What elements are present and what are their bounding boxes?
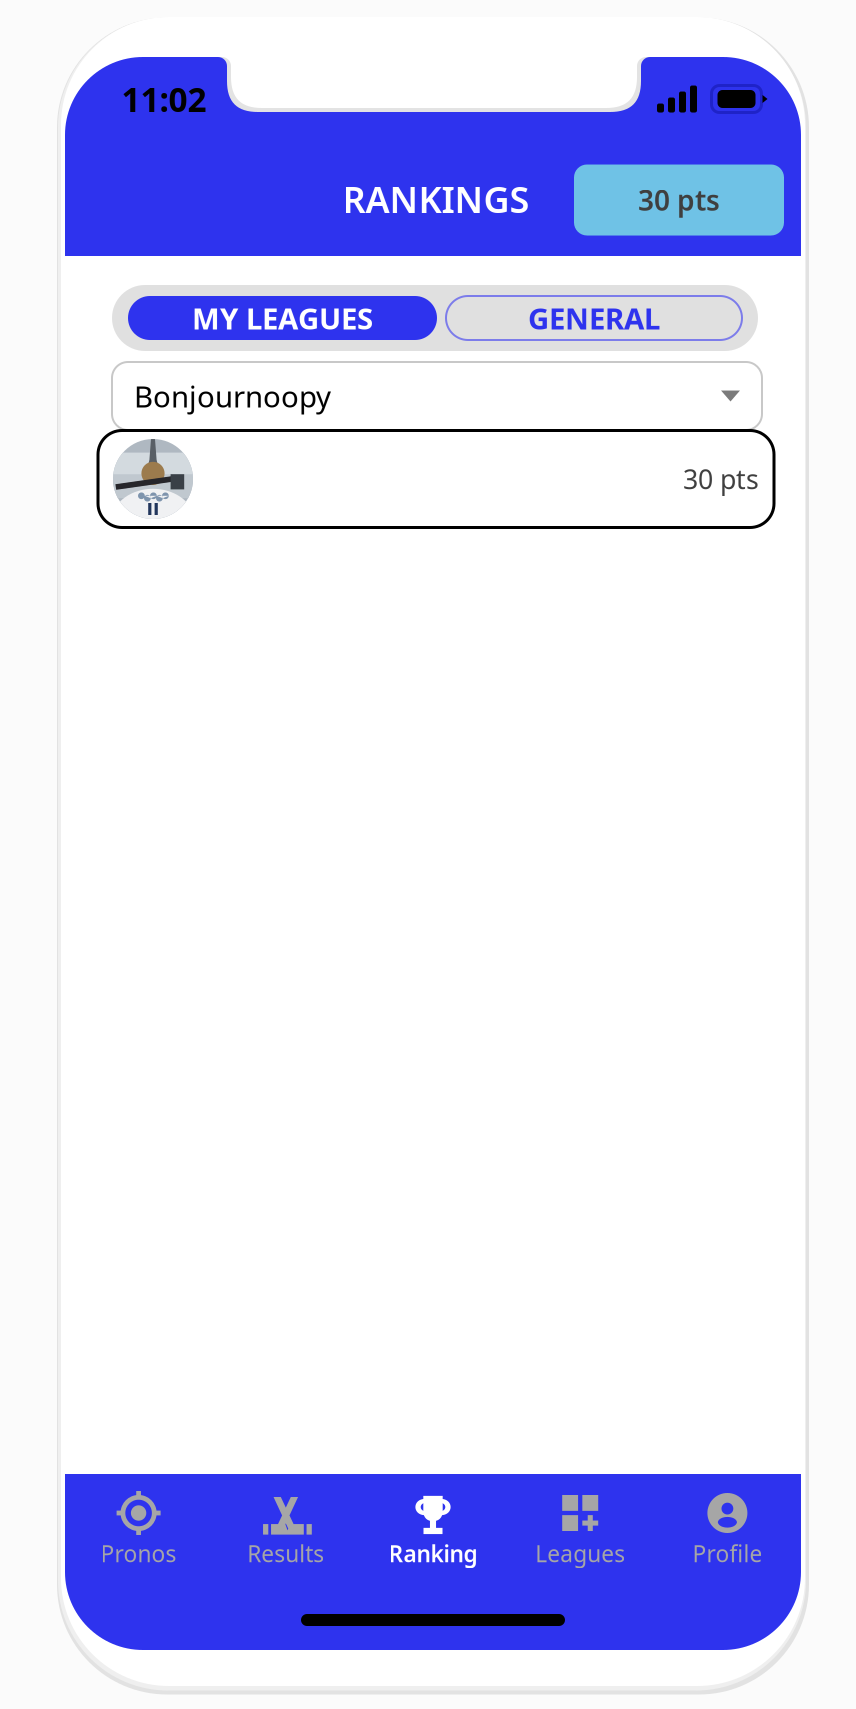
- staticText: Results: [247, 1538, 324, 1568]
- button[interactable]: Bonjournoopy: [112, 362, 762, 430]
- button[interactable]: GENERAL: [446, 296, 742, 340]
- staticText: Profile: [692, 1538, 762, 1568]
- button[interactable]: Results: [212, 1489, 359, 1568]
- button[interactable]: 30 pts: [574, 164, 784, 235]
- staticText: 11:02: [121, 77, 206, 121]
- button[interactable]: Ranking: [359, 1489, 507, 1568]
- staticText: MY LEAGUES: [192, 298, 373, 337]
- staticText: Ranking: [388, 1538, 477, 1568]
- button[interactable]: 30 pts: [98, 430, 774, 527]
- button[interactable]: Pronos: [65, 1489, 212, 1568]
- staticText: Pronos: [101, 1538, 177, 1568]
- staticText: RANKINGS: [342, 175, 529, 223]
- staticText: 30 pts: [683, 461, 759, 497]
- staticText: Bonjournoopy: [134, 376, 331, 415]
- button[interactable]: MY LEAGUES: [128, 296, 437, 340]
- button[interactable]: Profile: [654, 1489, 801, 1568]
- staticText: Leagues: [535, 1538, 625, 1568]
- staticText: GENERAL: [528, 298, 660, 337]
- button[interactable]: Leagues: [507, 1489, 654, 1568]
- staticText: 30 pts: [638, 181, 720, 219]
